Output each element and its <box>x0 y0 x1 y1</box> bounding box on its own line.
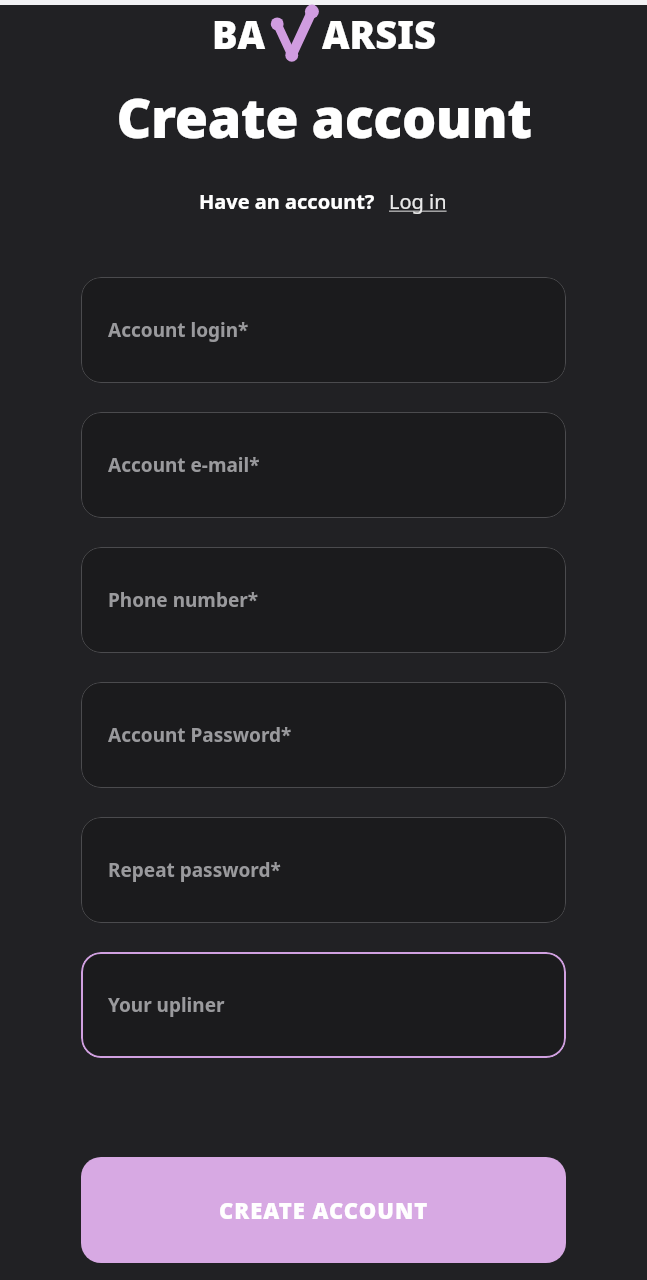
staticText: Repeat password* <box>108 857 281 883</box>
staticText: Log in <box>389 188 447 215</box>
staticText: Create account <box>116 80 532 154</box>
other: Bavarsis logo <box>212 6 436 62</box>
button[interactable]: Account e-mail* <box>81 412 566 518</box>
staticText: ARSIS <box>322 8 436 60</box>
staticText: BA <box>212 8 266 60</box>
staticText: Have an account? <box>199 188 375 215</box>
staticText: Phone number* <box>108 587 259 613</box>
staticText: Your upliner <box>108 992 225 1018</box>
staticText: Account e-mail* <box>108 452 260 478</box>
staticText: Account Password* <box>108 722 292 748</box>
staticText: Account login* <box>108 317 249 343</box>
button[interactable]: Account login* <box>81 277 566 383</box>
button[interactable]: Phone number* <box>81 547 566 653</box>
button[interactable]: CREATE ACCOUNT <box>81 1157 566 1263</box>
button[interactable]: Log in <box>387 186 449 217</box>
button[interactable]: Account Password* <box>81 682 566 788</box>
button[interactable]: Your upliner <box>81 952 566 1058</box>
button[interactable]: Repeat password* <box>81 817 566 923</box>
staticText: CREATE ACCOUNT <box>219 1195 429 1225</box>
